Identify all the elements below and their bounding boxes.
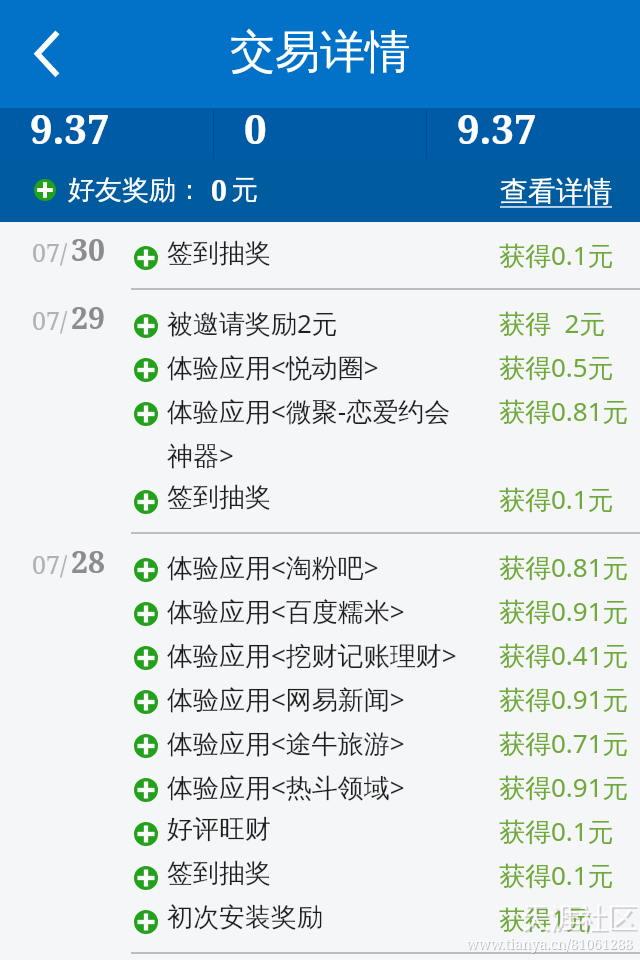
staticText: 获得0.1元	[499, 481, 614, 517]
staticText: 9.37	[30, 101, 110, 154]
button[interactable]: 体验应用<热斗领域>	[131, 770, 640, 814]
staticText: 获得 2元	[499, 305, 606, 341]
staticText: 签到抽奖	[167, 237, 464, 270]
button[interactable]: 体验应用<微聚-恋爱约会	[131, 394, 640, 438]
staticText: 获得0.1元	[499, 813, 614, 849]
button[interactable]: 神器>	[131, 438, 640, 482]
button[interactable]: Back	[0, 0, 96, 108]
button[interactable]: 体验应用<网易新闻>	[131, 682, 640, 726]
staticText: 初次安装奖励	[167, 901, 464, 934]
staticText: 28	[71, 541, 105, 582]
staticText: 获得0.91元	[499, 769, 629, 805]
button[interactable]: 初次安装奖励	[131, 902, 640, 946]
staticText: 0	[244, 101, 267, 154]
staticText: 07/	[32, 547, 68, 581]
staticText: 获得0.71元	[499, 725, 629, 761]
button[interactable]: 好评旺财	[131, 814, 640, 858]
staticText: 30	[71, 229, 105, 270]
button[interactable]: 签到抽奖	[131, 482, 640, 526]
button[interactable]: 被邀请奖励2元	[131, 306, 640, 350]
staticText: 获得0.81元	[499, 549, 629, 585]
staticText: 签到抽奖	[167, 481, 464, 514]
staticText: 体验应用<百度糯米>	[167, 593, 464, 629]
staticText: 被邀请奖励2元	[167, 305, 464, 341]
staticText: 体验应用<悦动圈>	[167, 349, 464, 385]
button[interactable]: 查看详情	[500, 174, 612, 209]
staticText: 获得1元	[499, 901, 592, 937]
button[interactable]: 体验应用<挖财记账理财>	[131, 638, 640, 682]
staticText: 天涯社区	[521, 900, 637, 937]
staticText: 体验应用<挖财记账理财>	[167, 637, 464, 673]
button[interactable]: 体验应用<途牛旅游>	[131, 726, 640, 770]
button[interactable]: 签到抽奖	[131, 858, 640, 902]
staticText: 获得0.5元	[499, 349, 614, 385]
staticText: 交易详情	[230, 24, 410, 81]
button[interactable]: 体验应用<淘粉吧>	[131, 550, 640, 594]
button[interactable]: 体验应用<悦动圈>	[131, 350, 640, 394]
staticText: 体验应用<淘粉吧>	[167, 549, 464, 585]
staticText: 体验应用<热斗领域>	[167, 769, 464, 805]
staticText: 获得0.1元	[499, 857, 614, 893]
staticText: 查看详情	[500, 174, 612, 209]
staticText: 9.37	[457, 101, 537, 154]
staticText: 获得0.91元	[499, 593, 629, 629]
button[interactable]: 体验应用<百度糯米>	[131, 594, 640, 638]
staticText: 天涯社区	[523, 902, 639, 939]
staticText: 07/	[32, 303, 68, 337]
staticText: 体验应用<微聚-恋爱约会	[167, 393, 464, 429]
button[interactable]: 签到抽奖	[131, 238, 640, 282]
staticText: 好评旺财	[167, 813, 464, 846]
staticText: 获得0.81元	[499, 393, 629, 429]
staticText: 体验应用<网易新闻>	[167, 681, 464, 717]
staticText: 元	[231, 173, 258, 207]
button[interactable]: 好友奖励：	[34, 171, 258, 209]
staticText: 获得0.91元	[499, 681, 629, 717]
staticText: www.tianya.cn/81061288	[467, 935, 634, 954]
staticText: 好友奖励：	[68, 173, 203, 207]
staticText: 签到抽奖	[167, 857, 464, 890]
staticText: 神器>	[167, 437, 464, 473]
staticText: 获得0.1元	[499, 237, 614, 273]
staticText: 29	[71, 297, 105, 338]
staticText: www.tianya.cn/81061288	[466, 934, 633, 953]
staticText: 0	[211, 171, 227, 209]
staticText: 07/	[32, 235, 68, 269]
staticText: 体验应用<途牛旅游>	[167, 725, 464, 761]
staticText: 获得0.41元	[499, 637, 629, 673]
